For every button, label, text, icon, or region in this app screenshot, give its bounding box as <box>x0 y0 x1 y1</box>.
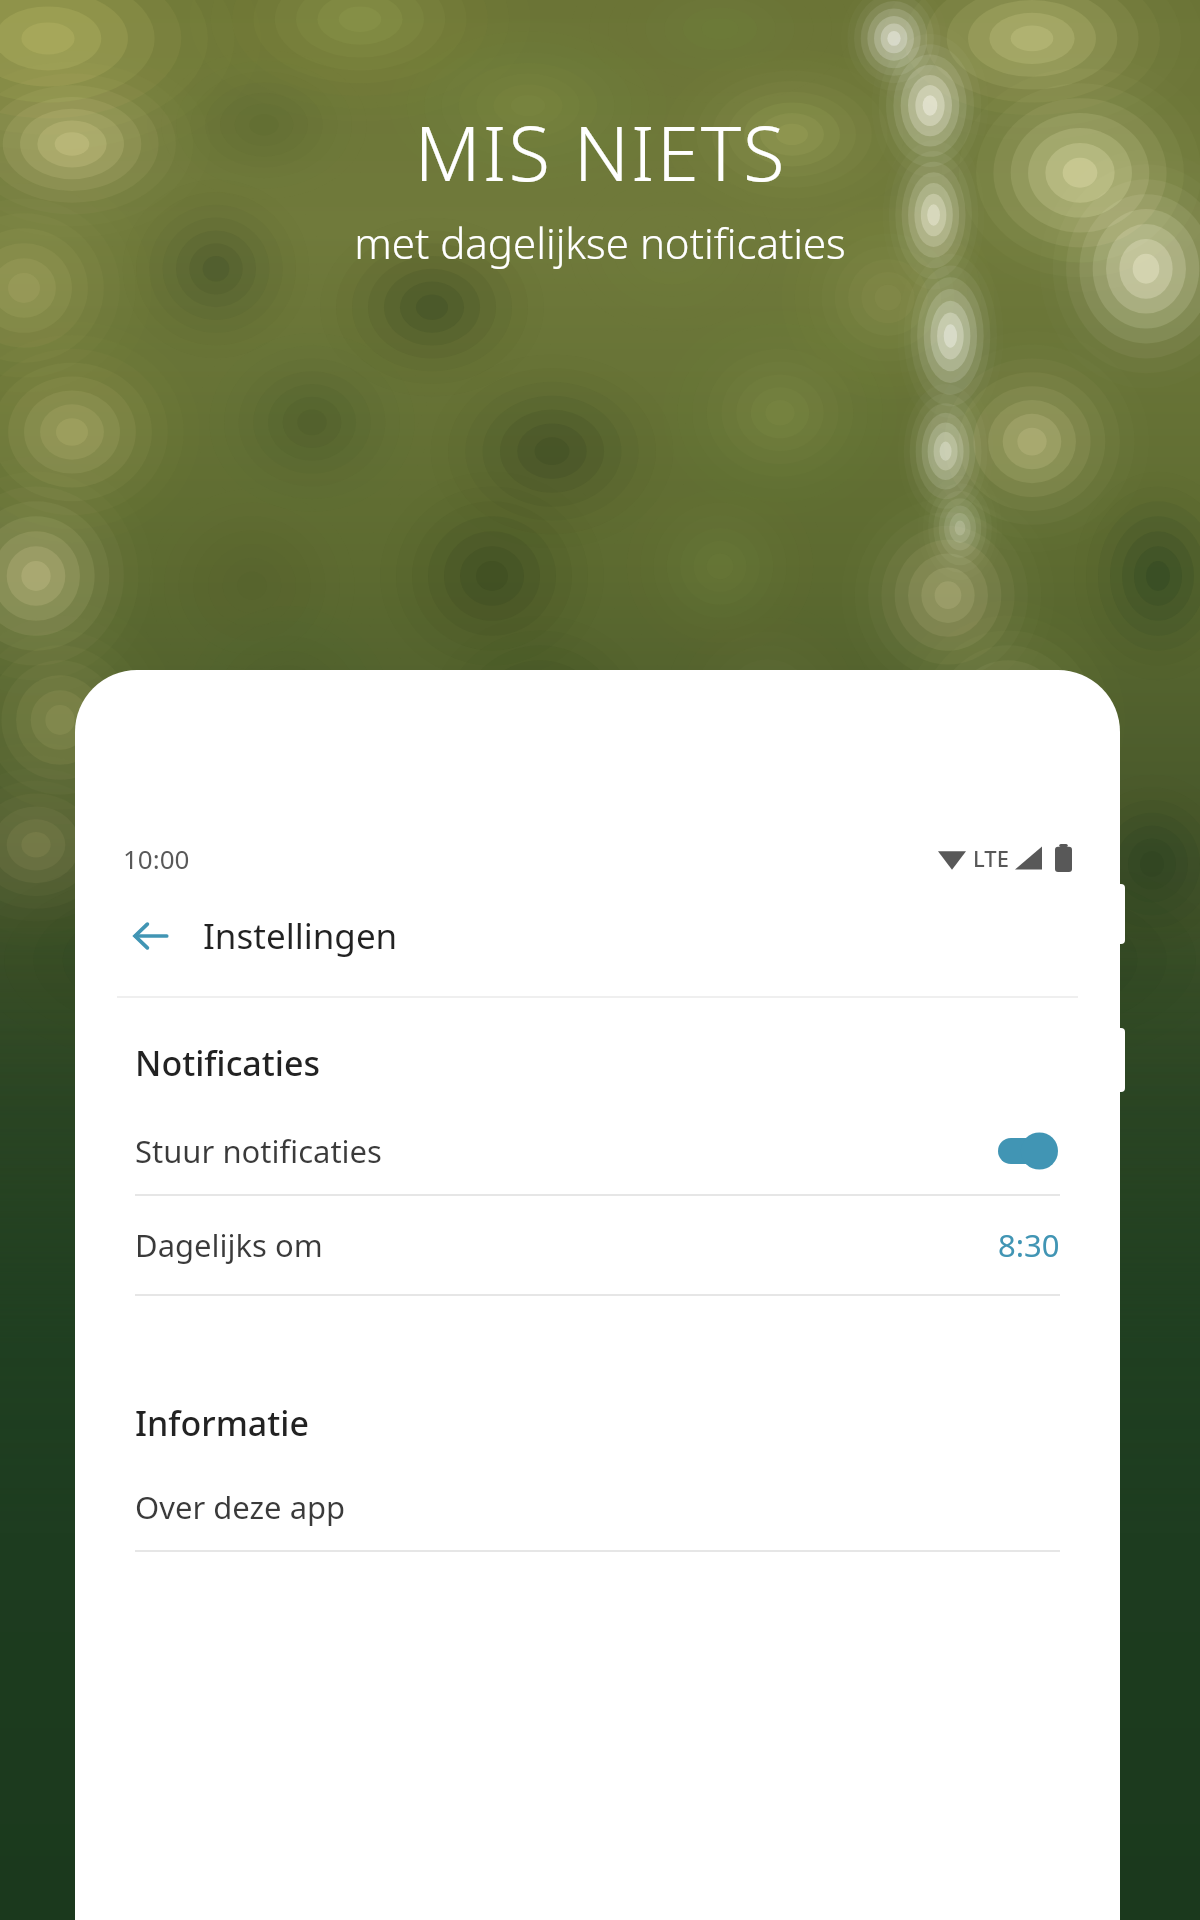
staticText: met dagelijkse notificaties <box>354 214 846 271</box>
staticText: Instellingen <box>203 912 398 960</box>
staticText: Dagelijks om <box>135 1224 323 1266</box>
staticText: Stuur notificaties <box>135 1130 382 1172</box>
staticText: 10:00 <box>123 841 190 876</box>
button[interactable]: Dagelijks om <box>75 1196 1120 1294</box>
staticText: Informatie <box>135 1400 310 1446</box>
button[interactable]: Terug <box>119 905 181 967</box>
staticText: Over deze app <box>135 1486 346 1528</box>
staticText: Notificaties <box>135 1040 321 1086</box>
staticText: 8:30 <box>998 1224 1060 1266</box>
staticText: LTE <box>973 843 1009 873</box>
staticText: MIS NIETS <box>414 100 787 204</box>
button[interactable]: Over deze app <box>75 1464 1120 1550</box>
button[interactable]: Stuur notificaties <box>75 1108 1120 1194</box>
